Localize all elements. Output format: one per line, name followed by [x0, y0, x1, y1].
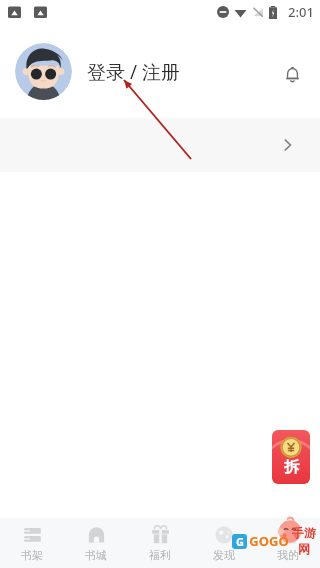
button[interactable]: 登录 / 注册	[15, 43, 180, 100]
button[interactable]: Open red packet	[272, 430, 310, 484]
staticText: 2:01	[288, 3, 314, 21]
staticText: GOGO	[249, 532, 289, 550]
button[interactable]: 发现	[192, 519, 256, 567]
button[interactable]: 福利	[128, 519, 192, 567]
button[interactable]: 书架	[0, 519, 64, 567]
staticText: 手游网	[290, 525, 318, 557]
staticText: 书城	[85, 548, 107, 562]
staticText: 福利	[149, 548, 171, 562]
button[interactable]: 我的	[256, 519, 320, 567]
staticText: 登录 / 注册	[87, 59, 180, 85]
button[interactable]	[0, 118, 320, 172]
staticText: G	[236, 534, 244, 549]
staticText: 书架	[21, 548, 43, 562]
button[interactable]: 书城	[64, 519, 128, 567]
staticText: 拆	[284, 458, 299, 477]
staticText: 我的	[277, 548, 299, 562]
staticText: 发现	[213, 548, 235, 562]
button[interactable]: Notifications	[278, 60, 306, 88]
